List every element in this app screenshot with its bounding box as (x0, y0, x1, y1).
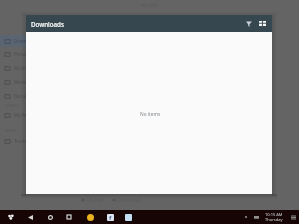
staticText: Downloads (31, 20, 64, 28)
button[interactable]: Facebook (103, 210, 117, 224)
button[interactable]: Downloads (0, 35, 72, 47)
staticText: Music (14, 65, 27, 71)
button[interactable]: Pictures (0, 48, 72, 60)
button[interactable]: Recents (62, 210, 76, 224)
button[interactable]: My files (81, 197, 143, 203)
button[interactable]: 10:15 AM (265, 212, 283, 222)
button[interactable]: Documents (0, 90, 72, 102)
button[interactable]: Notifications (289, 213, 297, 221)
staticText: No items (140, 111, 161, 118)
button[interactable]: Music (0, 62, 72, 74)
button[interactable]: View mode (256, 17, 269, 30)
button[interactable]: Movies (0, 76, 72, 88)
button[interactable]: My Recent (0, 109, 72, 121)
staticText: Pictures (14, 51, 32, 57)
staticText: My Recent (14, 112, 37, 118)
staticText: f (109, 214, 112, 221)
button[interactable]: Back (23, 210, 37, 224)
staticText: Thursday (265, 217, 283, 222)
button[interactable]: Gallery (121, 210, 135, 224)
button[interactable]: Sort (242, 17, 255, 30)
button[interactable]: Show hidden icons (242, 213, 250, 221)
staticText: Downloads (14, 38, 39, 44)
staticText: Movies (14, 79, 30, 85)
button[interactable]: App store (83, 210, 97, 224)
staticText: Documents (14, 93, 39, 99)
button[interactable]: Trash (0, 135, 72, 147)
staticText: 10:15 AM (265, 212, 283, 217)
button[interactable]: Home (43, 210, 57, 224)
button[interactable]: Menu (4, 210, 18, 224)
button[interactable]: Network (251, 212, 261, 222)
staticText: Trash (14, 138, 26, 144)
